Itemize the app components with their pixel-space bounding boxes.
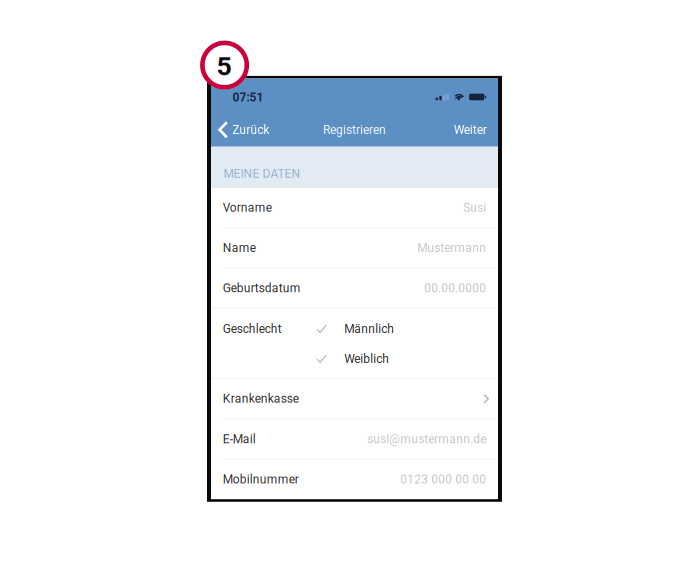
staticText: MEINE DATEN (224, 167, 301, 181)
staticText: Name (223, 241, 256, 255)
staticText: Männlich (344, 322, 394, 336)
staticText: 5 (217, 50, 232, 82)
button[interactable]: Krankenkasse (211, 379, 498, 418)
staticText: Weiter (454, 123, 487, 137)
staticText: Mustermann (417, 241, 486, 255)
staticText: Registrieren (323, 123, 386, 137)
staticText: 07:51 (232, 90, 263, 104)
button[interactable]: Vorname (211, 188, 498, 227)
button[interactable]: Weiblich (316, 344, 486, 374)
staticText: Geburtsdatum (223, 281, 301, 295)
staticText: Krankenkasse (223, 392, 299, 406)
staticText: Geschlecht (223, 322, 282, 336)
staticText: Mobilnummer (223, 472, 299, 486)
staticText: 00.00.0000 (424, 281, 486, 295)
staticText: 0123 000 00 00 (400, 472, 486, 486)
staticText: Susi (463, 200, 486, 215)
button[interactable]: Männlich (316, 314, 486, 344)
staticText: E-Mail (223, 432, 256, 446)
staticText: susi@mustermann.de (367, 432, 486, 446)
button[interactable]: Mobilnummer (211, 460, 498, 499)
staticText: Vorname (223, 200, 272, 215)
staticText: Weiblich (344, 352, 389, 366)
staticText: Zurück (232, 123, 269, 137)
button[interactable]: Weiter (408, 117, 498, 143)
button[interactable]: Name (211, 228, 498, 267)
button[interactable]: Zurück (211, 117, 321, 143)
button[interactable]: E-Mail (211, 419, 498, 459)
button[interactable]: Geburtsdatum (211, 268, 498, 308)
